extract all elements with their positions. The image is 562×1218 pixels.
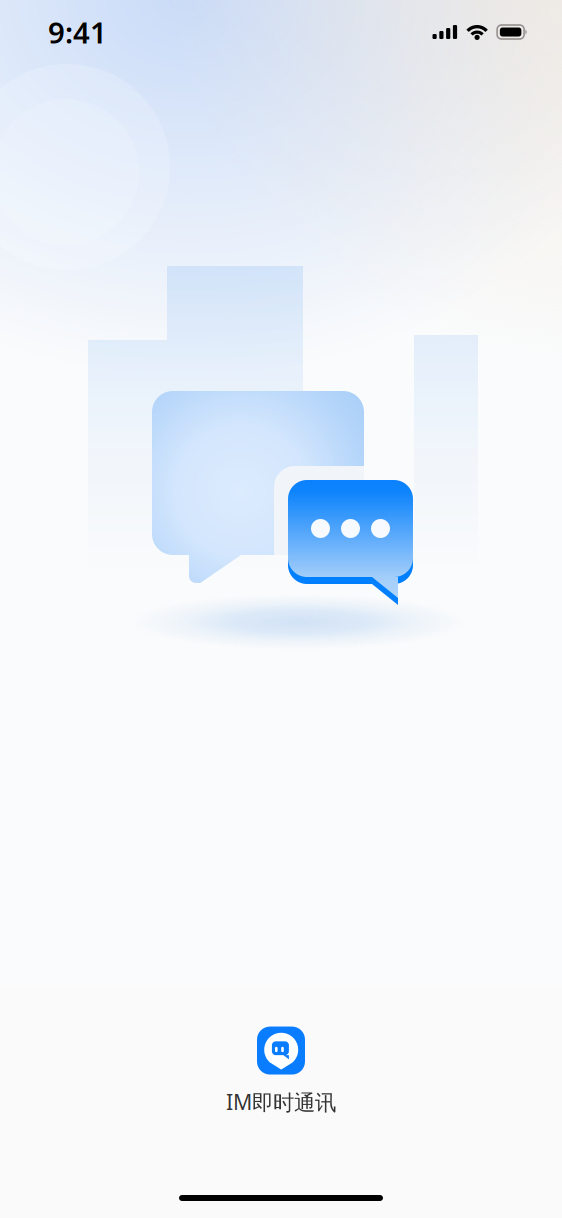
staticText: 9:41 [48, 12, 107, 51]
staticText: IM即时通讯 [226, 1088, 336, 1116]
